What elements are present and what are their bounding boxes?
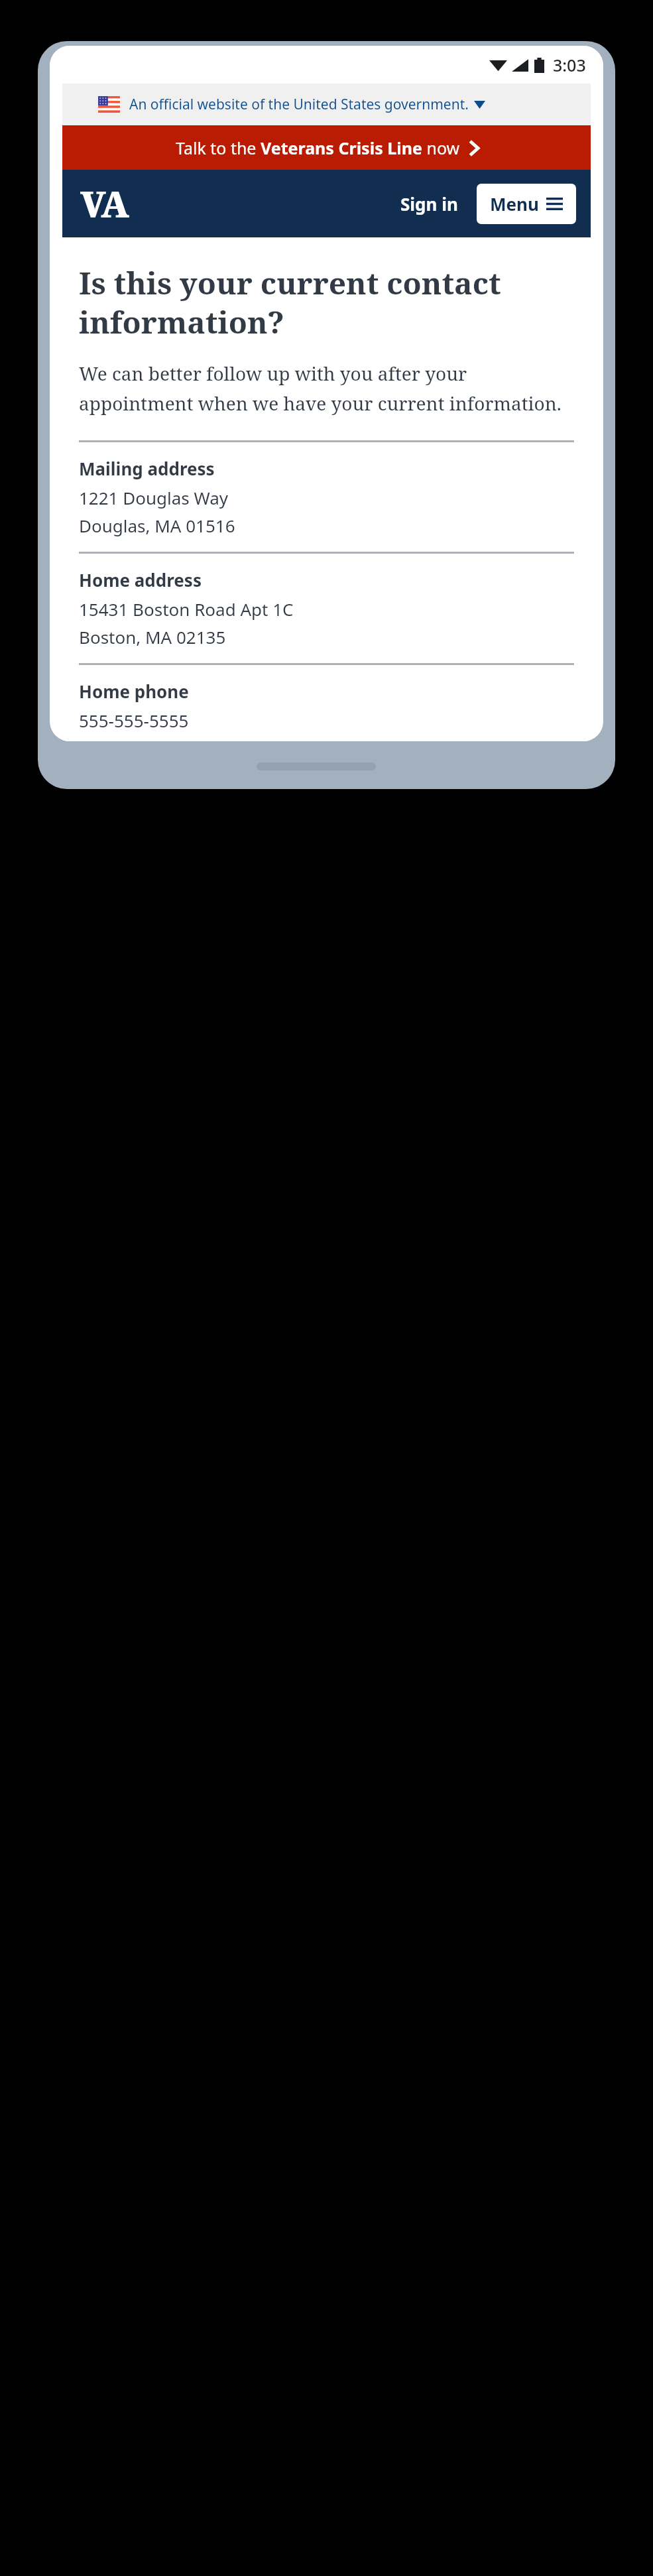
staticText: 3:03 bbox=[553, 54, 586, 76]
button[interactable]: Sign in bbox=[394, 187, 465, 221]
staticText: An official website of the United States… bbox=[129, 95, 469, 114]
staticText: Mailing address bbox=[79, 457, 215, 480]
button[interactable]: Menu bbox=[477, 184, 576, 224]
button[interactable]: An official website of the United States… bbox=[62, 84, 591, 125]
staticText: We can better follow up with you after y… bbox=[79, 361, 574, 416]
staticText: Is this your current contact information… bbox=[79, 262, 574, 342]
button[interactable]: VA bbox=[80, 179, 127, 228]
staticText: Talk to the bbox=[176, 137, 261, 159]
staticText: Home phone bbox=[79, 680, 189, 703]
staticText: Menu bbox=[490, 192, 539, 215]
staticText: Boston, MA 02135 bbox=[79, 625, 226, 648]
staticText: 15431 Boston Road Apt 1C bbox=[79, 597, 294, 621]
staticText: Douglas, MA 01516 bbox=[79, 514, 235, 537]
staticText: now bbox=[422, 137, 460, 159]
staticText: 1221 Douglas Way bbox=[79, 486, 229, 509]
staticText: Sign in bbox=[400, 192, 458, 215]
staticText: 555-555-5555 bbox=[79, 709, 189, 732]
staticText: Veterans Crisis Line bbox=[261, 137, 422, 159]
button[interactable]: Talk to the bbox=[62, 125, 591, 170]
staticText: Home address bbox=[79, 568, 202, 591]
